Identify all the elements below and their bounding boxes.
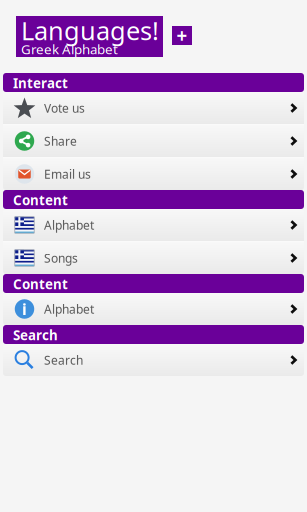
staticText: Interact — [13, 74, 68, 92]
button[interactable]: Alphabet — [3, 209, 304, 242]
button[interactable]: Share — [3, 125, 304, 158]
staticText: + — [176, 23, 187, 48]
button[interactable]: i — [3, 293, 304, 325]
button[interactable]: Email us — [3, 158, 304, 190]
staticText: Email us — [44, 166, 91, 182]
button[interactable]: Vote us — [3, 92, 304, 125]
staticText: Content — [13, 275, 68, 293]
staticText: Share — [44, 133, 77, 149]
staticText: i — [22, 298, 27, 320]
staticText: Search — [44, 352, 83, 368]
staticText: Languages! — [21, 14, 159, 47]
staticText: Search — [13, 326, 58, 344]
staticText: Content — [13, 191, 68, 209]
staticText: Greek Alphabet — [21, 40, 118, 58]
staticText: Alphabet — [44, 301, 94, 317]
staticText: Alphabet — [44, 217, 94, 233]
button[interactable]: Search — [3, 344, 304, 376]
button[interactable]: Add — [172, 26, 192, 45]
button[interactable]: Songs — [3, 242, 304, 274]
staticText: Songs — [44, 250, 78, 266]
staticText: Vote us — [44, 100, 85, 116]
